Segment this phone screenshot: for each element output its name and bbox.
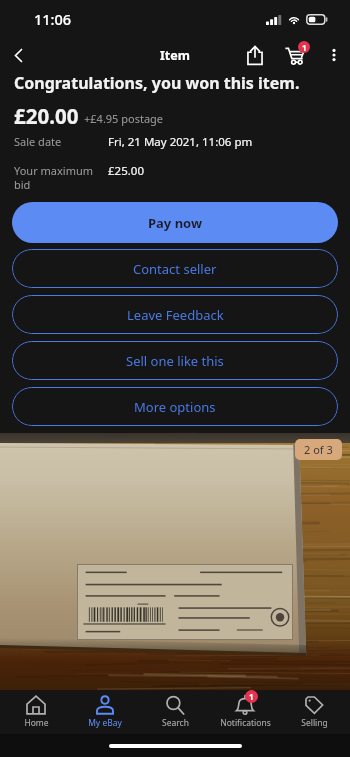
button[interactable]: Search <box>141 695 209 729</box>
button[interactable]: Sell one like this <box>12 341 338 380</box>
staticText: Pay now <box>148 214 203 232</box>
button[interactable]: Back <box>0 38 36 72</box>
staticText: 2 of 3 <box>304 442 333 457</box>
button[interactable]: Selling <box>280 695 348 729</box>
staticText: £25.00 <box>108 163 144 179</box>
button[interactable]: 1 <box>211 695 279 729</box>
button[interactable]: Pay now <box>12 202 338 243</box>
staticText: +£4.95 postage <box>84 111 164 126</box>
staticText: Your maximum bid <box>14 163 108 192</box>
staticText: Home <box>24 717 49 729</box>
button[interactable]: Leave Feedback <box>12 295 338 334</box>
staticText: 1 <box>249 691 254 702</box>
staticText: More options <box>134 398 216 416</box>
staticText: Notifications <box>220 717 271 729</box>
staticText: Sell one like this <box>126 352 224 370</box>
staticText: Item <box>160 47 190 64</box>
button[interactable]: Contact seller <box>12 249 338 288</box>
staticText: Sale date <box>14 134 108 149</box>
staticText: £20.00 <box>14 102 79 128</box>
staticText: My eBay <box>88 717 122 729</box>
staticText: Leave Feedback <box>127 306 224 324</box>
button[interactable]: 2 of 3 <box>295 439 342 460</box>
staticText: Contact seller <box>133 260 217 278</box>
button[interactable]: Home <box>2 695 70 729</box>
staticText: 11:06 <box>34 9 72 29</box>
staticText: Fri, 21 May 2021, 11:06 pm <box>108 134 253 150</box>
staticText: Congratulations, you won this item. <box>14 72 300 94</box>
button[interactable]: More options menu <box>322 39 346 71</box>
staticText: Selling <box>301 717 328 729</box>
button[interactable]: More options <box>12 387 338 426</box>
staticText: 1 <box>302 42 307 53</box>
button[interactable]: Share <box>240 38 270 72</box>
staticText: Search <box>162 717 189 729</box>
button[interactable]: My eBay <box>71 695 139 729</box>
button[interactable]: Shopping cart <box>281 38 307 72</box>
